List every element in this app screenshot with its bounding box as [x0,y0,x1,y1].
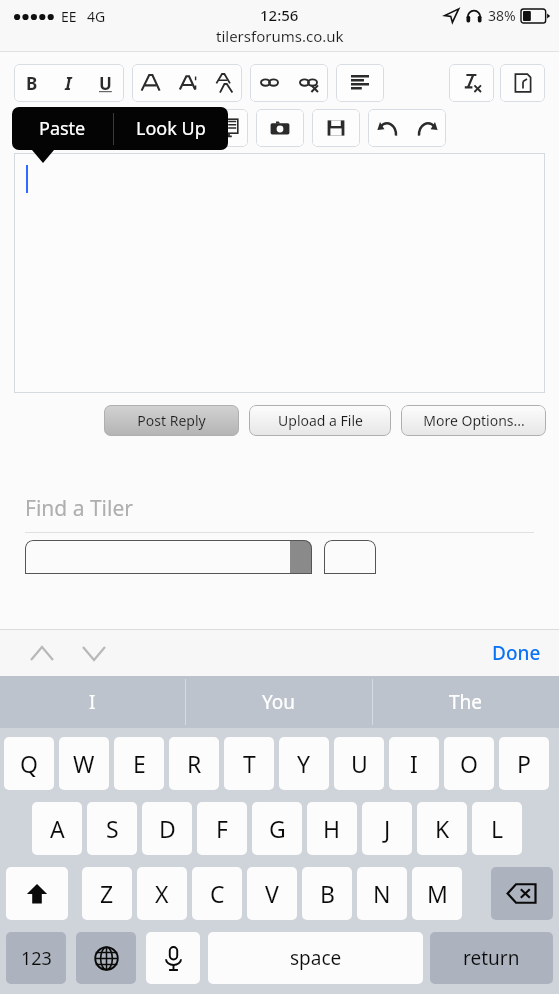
staticText: Post Reply [137,411,206,430]
button[interactable]: Alignment [336,64,384,102]
staticText: J [384,813,391,844]
button[interactable]: H [307,802,357,855]
button[interactable]: Y [279,737,329,790]
staticText: W [73,748,95,779]
button[interactable]: Remove link [289,64,328,102]
button[interactable]: G [252,802,302,855]
staticText: Z [100,878,114,909]
button[interactable]: M [412,867,462,920]
button[interactable]: Post Reply [104,405,239,436]
staticText: G [269,813,286,844]
staticText: D [159,813,176,844]
staticText: tilersforums.co.uk [216,26,344,46]
button[interactable]: Next field [74,633,114,673]
staticText: Q [20,748,38,779]
staticText: 12:56 [260,5,299,25]
staticText: I [410,748,418,779]
button[interactable]: T [224,737,274,790]
button[interactable]: Camera [256,109,304,147]
button[interactable]: D [142,802,192,855]
button[interactable]: 123 [6,932,66,984]
button[interactable]: C [192,867,242,920]
staticText: 38% [488,6,516,25]
button[interactable]: Media [170,109,209,147]
button[interactable]: Redo [407,109,446,147]
button[interactable]: Undo [368,109,407,147]
button[interactable]: More Options... [401,405,546,436]
button[interactable]: Shift [6,867,68,920]
staticText: You [262,689,296,715]
button[interactable]: Indent [64,109,113,147]
staticText: 4G [87,7,106,26]
button[interactable]: K [417,802,467,855]
button[interactable]: W [59,737,109,790]
button[interactable]: U [87,64,124,102]
staticText: N [373,878,391,909]
button[interactable]: List [14,109,64,147]
button[interactable]: Image [113,109,162,147]
button[interactable]: V [247,867,297,920]
staticText: Paste [39,116,86,141]
staticText: H [323,813,341,844]
staticText: L [491,813,504,844]
button[interactable]: Upload a File [249,405,391,436]
button[interactable]: U [334,737,384,790]
button[interactable]: A [32,802,82,855]
staticText: A [50,813,65,844]
button[interactable] [25,540,312,574]
staticText: More Options... [423,411,525,430]
staticText: I [65,72,72,95]
button[interactable]: You [186,676,372,728]
staticText: R [187,748,202,779]
button[interactable]: B [302,867,352,920]
button[interactable]: Text color [205,64,242,102]
staticText: return [463,945,520,971]
button[interactable]: Previous field [22,633,62,673]
button[interactable]: Dictation [146,932,200,984]
staticText: U [351,748,368,779]
staticText: U [99,72,112,95]
staticText: X [155,878,169,909]
button[interactable]: space [208,932,423,984]
button[interactable] [14,153,545,393]
button[interactable]: L [472,802,522,855]
staticText: B [320,878,335,909]
button[interactable]: Save [312,109,360,147]
button[interactable]: S [87,802,137,855]
button[interactable]: Font size [168,64,205,102]
button[interactable]: Q [4,737,54,790]
button[interactable]: Remove formatting [449,64,494,102]
staticText: Look Up [136,116,206,141]
staticText: Find a Tiler [25,494,133,523]
button[interactable]: Font [132,64,168,102]
button[interactable]: I [0,676,185,728]
button[interactable]: E [114,737,164,790]
button[interactable]: Backspace [491,867,553,920]
button[interactable]: Z [82,867,132,920]
button[interactable]: Change keyboard [76,932,136,984]
staticText: I [89,689,96,715]
staticText: 123 [21,946,52,971]
button[interactable]: The [373,676,559,728]
button[interactable]: return [430,932,553,984]
button[interactable]: I [50,64,87,102]
button[interactable]: Draft [500,64,545,102]
button[interactable]: N [357,867,407,920]
button[interactable] [324,540,376,574]
staticText: B [26,72,38,95]
staticText: O [460,748,478,779]
button[interactable]: Look Up [114,107,228,150]
button[interactable]: J [362,802,412,855]
button[interactable]: B [14,64,50,102]
button[interactable]: X [137,867,187,920]
button[interactable]: Insert link [250,64,289,102]
button[interactable]: F [197,802,247,855]
button[interactable]: P [499,737,549,790]
button[interactable]: R [169,737,219,790]
button[interactable]: Quote [209,109,248,147]
button[interactable]: O [444,737,494,790]
button[interactable]: Paste [12,107,113,150]
button[interactable]: I [389,737,439,790]
button[interactable]: Done [492,640,541,666]
staticText: V [265,878,279,909]
